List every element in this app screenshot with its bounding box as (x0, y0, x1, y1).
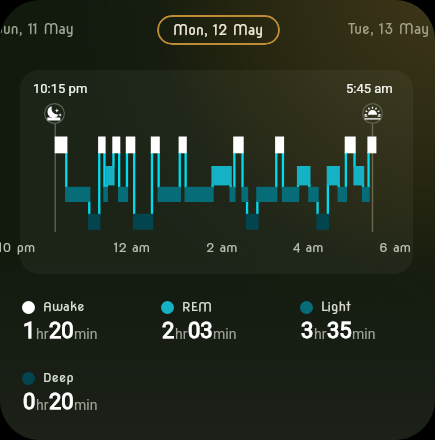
button[interactable]: Bed time (44, 103, 65, 124)
staticText: 4 am (293, 240, 324, 256)
staticText: hr (36, 326, 49, 342)
staticText: 10 pm (0, 240, 36, 256)
staticText: 35 (327, 318, 352, 344)
button[interactable]: Wake time (362, 103, 383, 124)
staticText: 0 (23, 389, 36, 415)
staticText: REM (182, 299, 213, 315)
staticText: min (213, 326, 237, 342)
staticText: min (74, 326, 98, 342)
button[interactable]: Light (300, 299, 375, 344)
staticText: hr (175, 326, 188, 342)
staticText: 10:15 pm (33, 81, 88, 96)
button[interactable]: Sun, 11 May (0, 21, 74, 38)
staticText: 20 (49, 318, 74, 344)
staticText: 1 (23, 318, 36, 344)
staticText: Deep (43, 370, 74, 386)
staticText: 3 (301, 318, 314, 344)
button[interactable]: Mon, 12 May (157, 15, 280, 45)
staticText: min (352, 326, 376, 342)
staticText: hr (314, 326, 327, 342)
staticText: 2 (162, 318, 175, 344)
staticText: 20 (49, 389, 74, 415)
staticText: 5:45 am (346, 81, 393, 96)
button[interactable] (20, 70, 413, 274)
staticText: Mon, 12 May (173, 22, 264, 39)
staticText: min (74, 397, 98, 413)
staticText: Light (321, 299, 351, 315)
button[interactable]: REM (161, 299, 236, 344)
staticText: hr (36, 397, 49, 413)
button[interactable]: Deep (22, 370, 97, 415)
staticText: Awake (43, 299, 85, 315)
button[interactable]: Tue, 13 May (348, 21, 430, 38)
button[interactable]: Awake (22, 299, 97, 344)
staticText: 2 am (206, 240, 238, 256)
staticText: 6 am (379, 240, 411, 256)
staticText: 12 am (114, 240, 150, 256)
staticText: 03 (188, 318, 213, 344)
